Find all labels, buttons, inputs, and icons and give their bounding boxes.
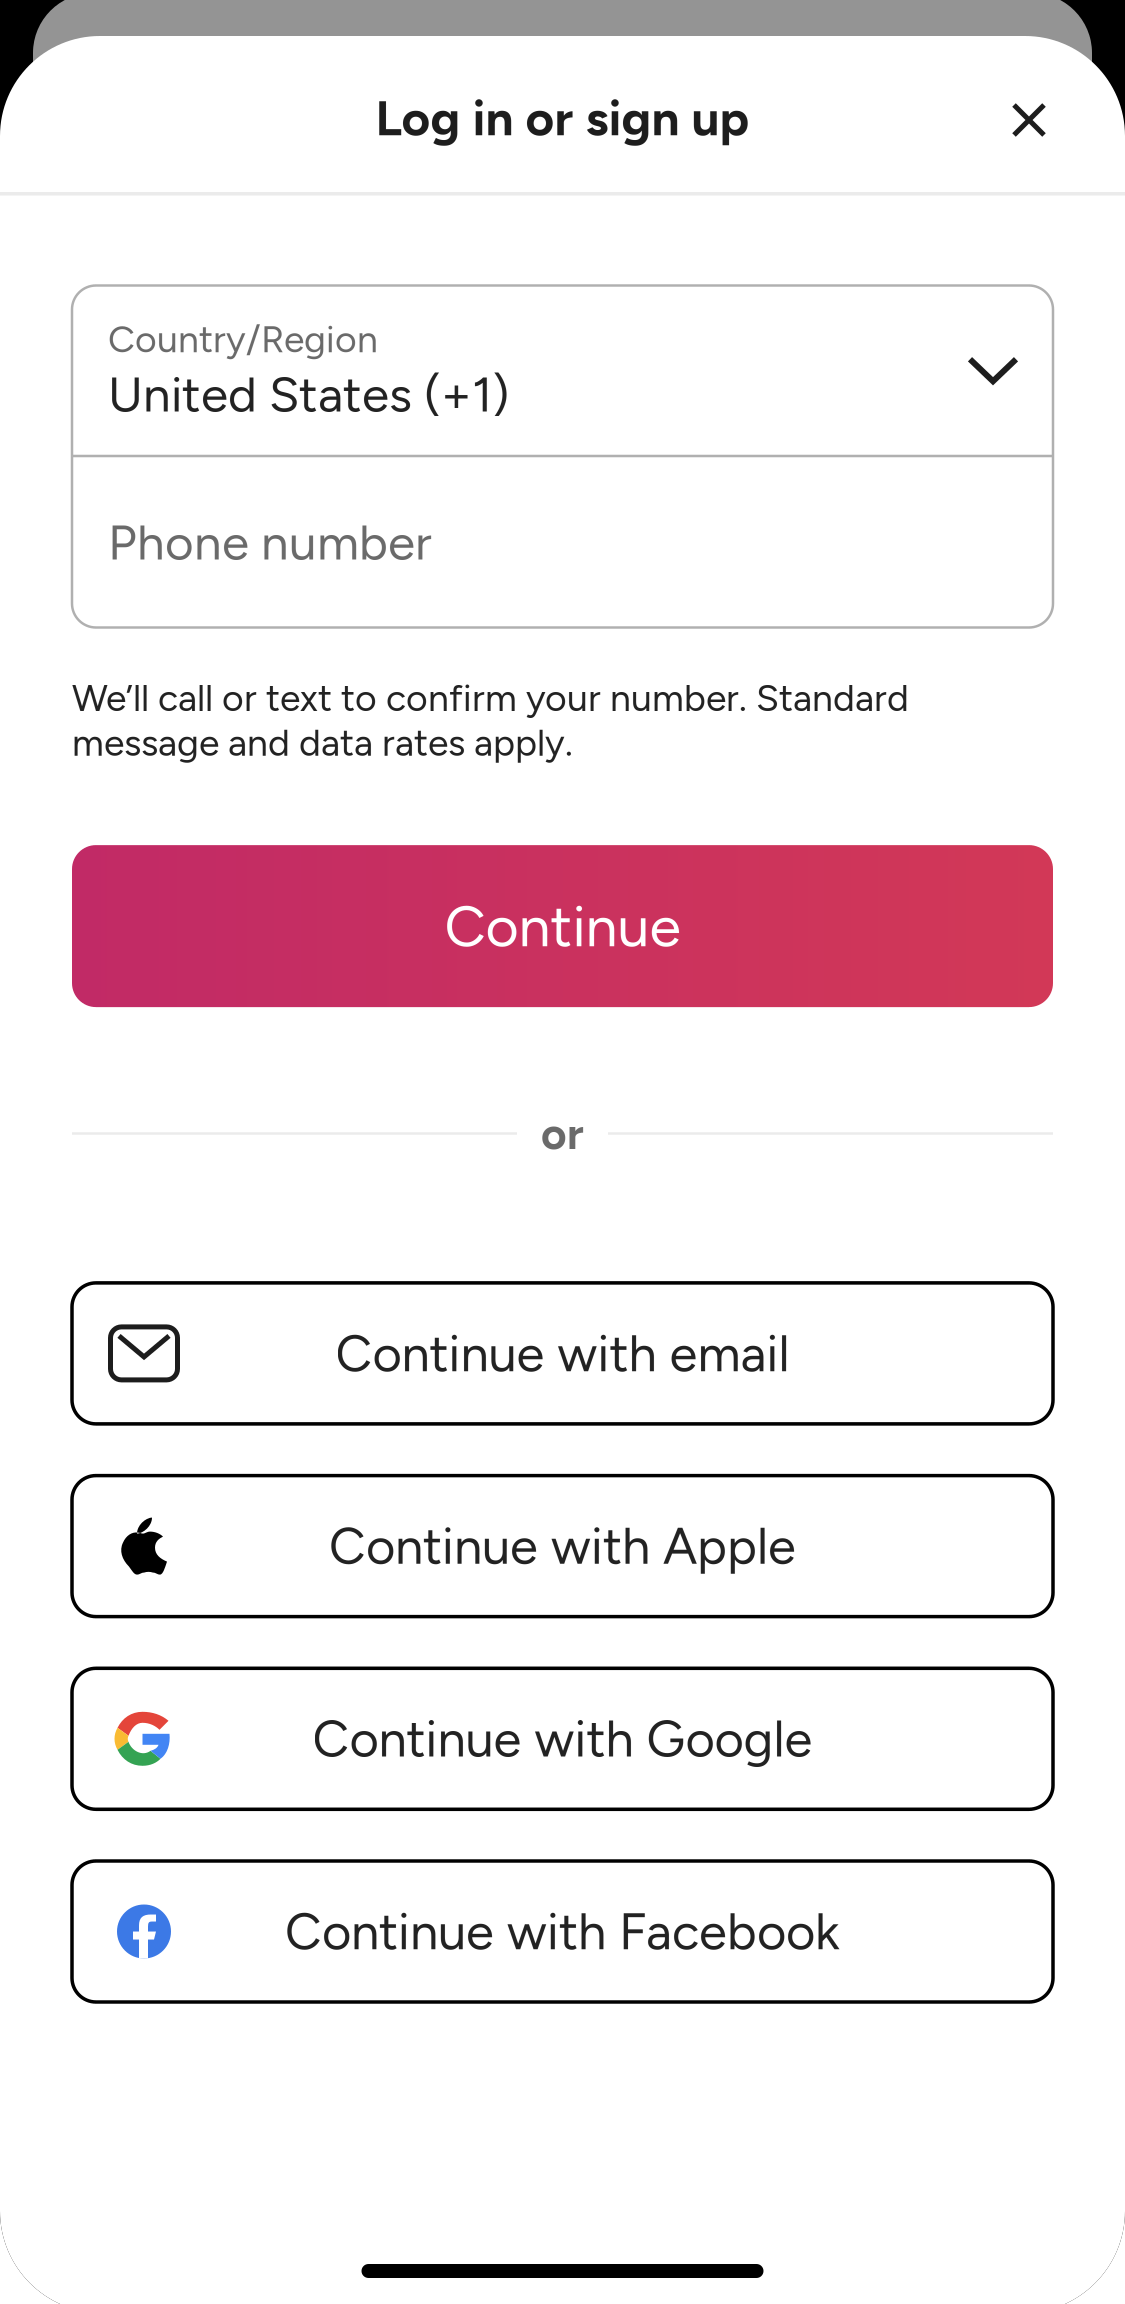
button[interactable]: Continue with email (72, 1283, 1053, 1424)
staticText: Continue with Facebook (285, 1901, 840, 1962)
staticText: or (541, 1107, 584, 1160)
staticText: We’ll call or text to confirm your numbe… (72, 675, 909, 765)
staticText: Continue (444, 892, 680, 960)
button[interactable]: Continue with Apple (72, 1476, 1053, 1617)
button[interactable]: Country/Region (72, 285, 1053, 627)
button[interactable]: Continue (72, 845, 1053, 1007)
staticText: Continue with Apple (329, 1516, 796, 1576)
button[interactable]: Continue with Facebook (72, 1861, 1053, 2002)
button[interactable]: Close (979, 70, 1079, 170)
staticText: Country/Region (108, 317, 378, 362)
button[interactable]: Continue with Google (72, 1668, 1053, 1809)
staticText: Phone number (108, 513, 432, 572)
staticText: Log in or sign up (375, 88, 749, 148)
staticText: Continue with email (335, 1323, 789, 1384)
staticText: United States (+1) (108, 365, 509, 424)
staticText: Continue with Google (312, 1708, 812, 1769)
